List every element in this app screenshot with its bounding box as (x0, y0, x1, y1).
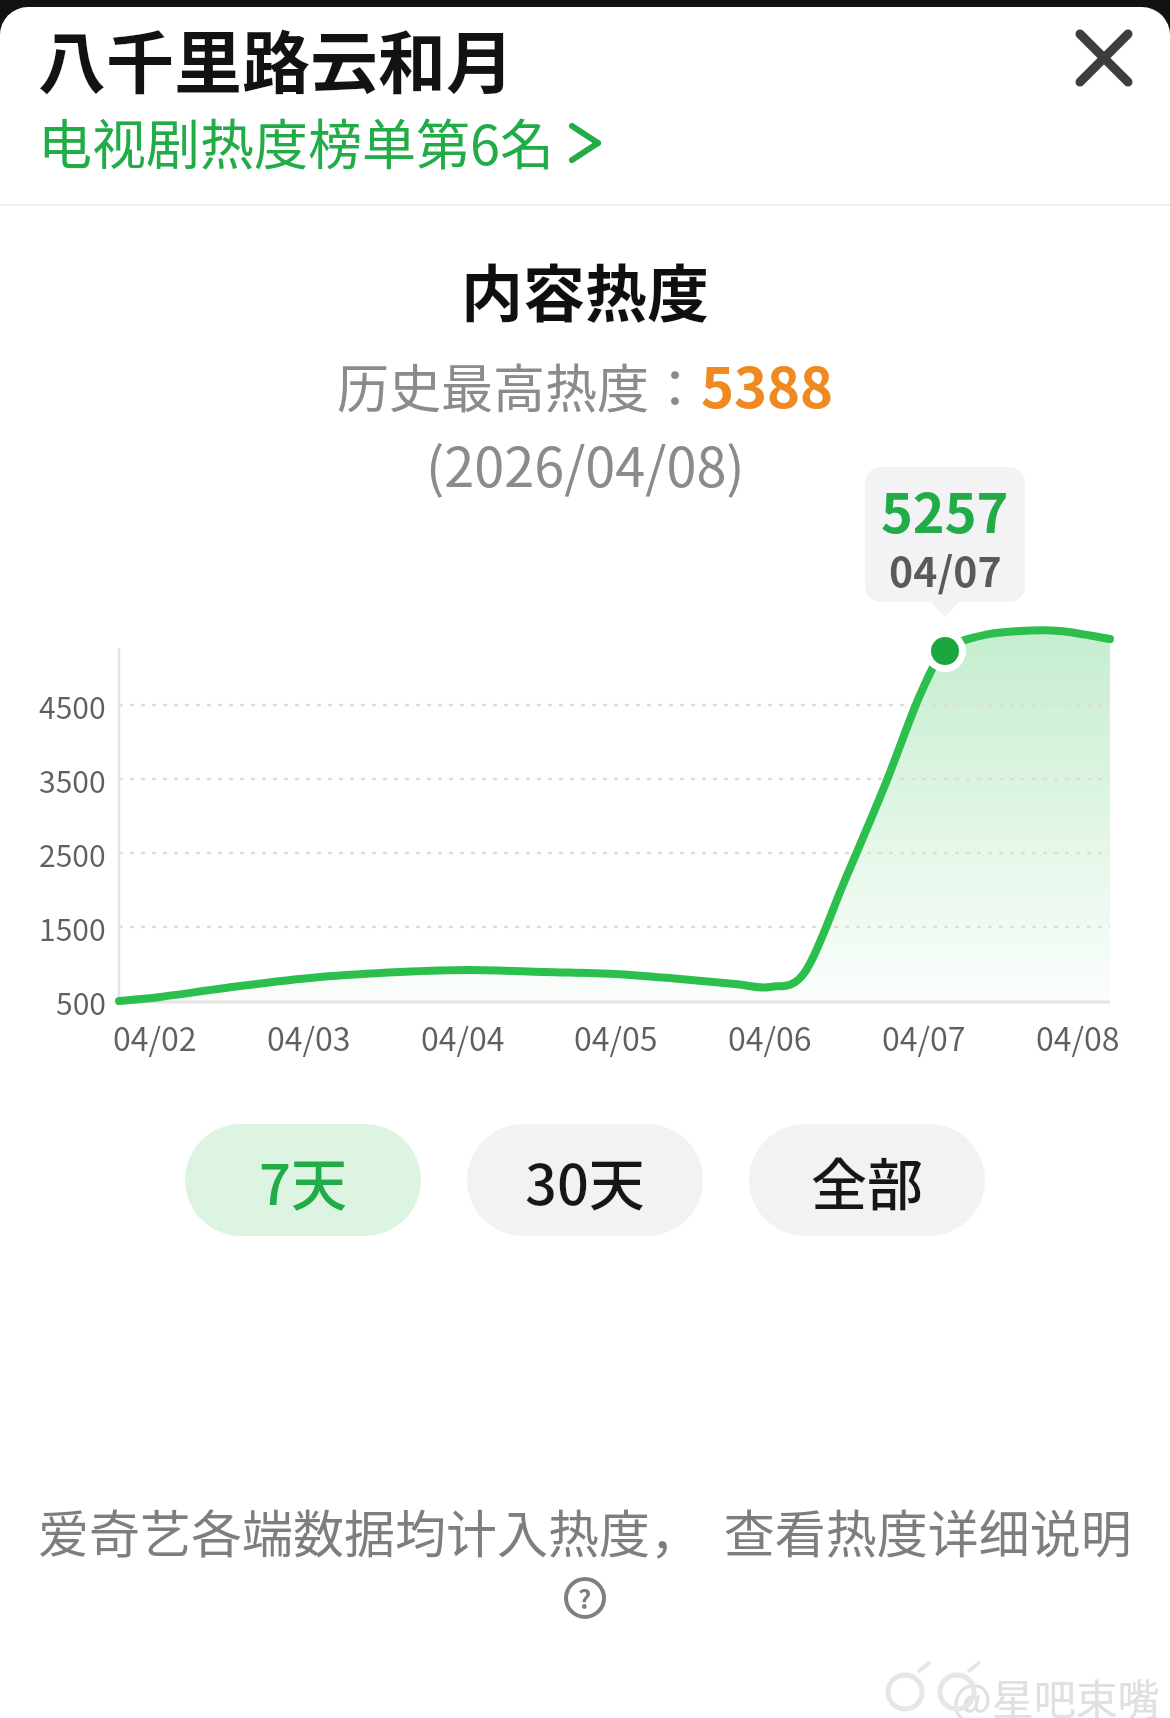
staticText: 2500 (39, 832, 106, 875)
staticText: 04/02 (113, 1014, 197, 1060)
staticText: ? (578, 1579, 592, 1617)
staticText: 04/05 (574, 1014, 658, 1060)
staticText: 04/07 (882, 1014, 966, 1060)
button[interactable]: 全部 (749, 1124, 985, 1236)
staticText: 历史最高热度：5388 (337, 343, 834, 424)
staticText: 30天 (525, 1140, 645, 1221)
staticText: 7天 (259, 1140, 347, 1221)
staticText: 电视剧热度榜单第6名 (38, 102, 554, 180)
button[interactable] (1056, 18, 1138, 100)
staticText: 4500 (39, 684, 106, 727)
staticText: 八千里路云和月 (38, 9, 515, 107)
staticText: 04/06 (728, 1014, 812, 1060)
staticText: 1500 (39, 906, 106, 949)
staticText: 3500 (39, 758, 106, 801)
staticText: 爱奇艺各端数据均计入热度， 查看热度详细说明 (38, 1494, 1132, 1568)
staticText: @星吧束嘴 (952, 1666, 1160, 1718)
button[interactable]: 30天 (467, 1124, 703, 1236)
staticText: (2026/04/08) (426, 424, 745, 502)
button[interactable]: ? (564, 1577, 606, 1619)
staticText: 5257 (881, 470, 1009, 548)
button[interactable]: 7天 (185, 1124, 421, 1236)
staticText: 04/04 (421, 1014, 505, 1060)
staticText: 500 (56, 980, 106, 1023)
staticText: 内容热度 (461, 245, 710, 335)
staticText: 04/03 (267, 1014, 351, 1060)
button[interactable] (30, 110, 630, 174)
staticText: 全部 (811, 1140, 923, 1221)
staticText: 04/07 (889, 539, 1002, 598)
staticText: 04/08 (1036, 1014, 1120, 1060)
